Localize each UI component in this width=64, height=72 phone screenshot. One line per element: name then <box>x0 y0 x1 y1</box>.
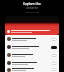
staticText: Explore the <box>5 2 59 6</box>
button[interactable]: Follow <box>51 38 57 41</box>
button[interactable]: Follow <box>51 68 57 71</box>
staticText: universe <box>5 6 59 10</box>
button[interactable]: Follow <box>6 35 58 43</box>
button[interactable]: Follow <box>6 51 58 59</box>
button[interactable]: Follow <box>6 43 58 51</box>
button[interactable]: Follow <box>51 62 57 65</box>
button[interactable]: Follow <box>51 46 57 49</box>
staticText: Trending now <box>5 11 59 14</box>
button[interactable] <box>5 16 59 35</box>
button[interactable]: Follow <box>6 59 58 67</box>
button[interactable]: Follow <box>51 54 57 57</box>
button[interactable]: Follow <box>6 67 58 72</box>
